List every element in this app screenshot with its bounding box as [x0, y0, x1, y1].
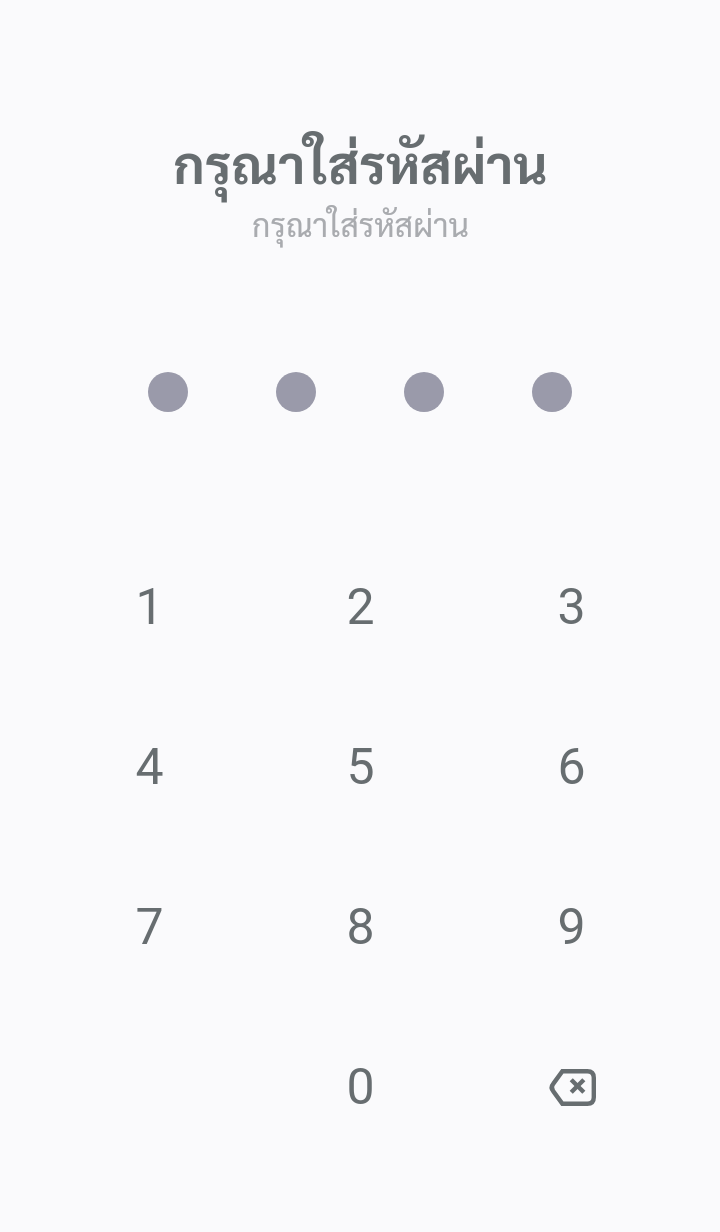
staticText: 7 [135, 898, 164, 957]
button[interactable]: 7 [44, 847, 255, 1007]
staticText: 5 [346, 738, 375, 797]
staticText: กรุณาใส่รหัสผ่าน [252, 203, 469, 245]
button[interactable]: 8 [255, 847, 466, 1007]
staticText: 1 [135, 578, 164, 637]
button[interactable]: 3 [466, 527, 677, 687]
button[interactable]: 1 [44, 527, 255, 687]
staticText: 6 [557, 738, 586, 797]
button[interactable]: 6 [466, 687, 677, 847]
button[interactable]: Backspace [466, 1007, 677, 1167]
button[interactable]: 9 [466, 847, 677, 1007]
staticText: 3 [557, 578, 586, 637]
button[interactable]: 4 [44, 687, 255, 847]
staticText: 2 [346, 578, 375, 637]
staticText: 0 [346, 1058, 375, 1117]
staticText: 4 [135, 738, 164, 797]
button[interactable]: 5 [255, 687, 466, 847]
staticText: 8 [346, 898, 375, 957]
button[interactable]: 0 [255, 1007, 466, 1167]
staticText: 9 [557, 898, 586, 957]
button[interactable]: 2 [255, 527, 466, 687]
staticText: กรุณาใส่รหัสผ่าน [173, 127, 548, 196]
